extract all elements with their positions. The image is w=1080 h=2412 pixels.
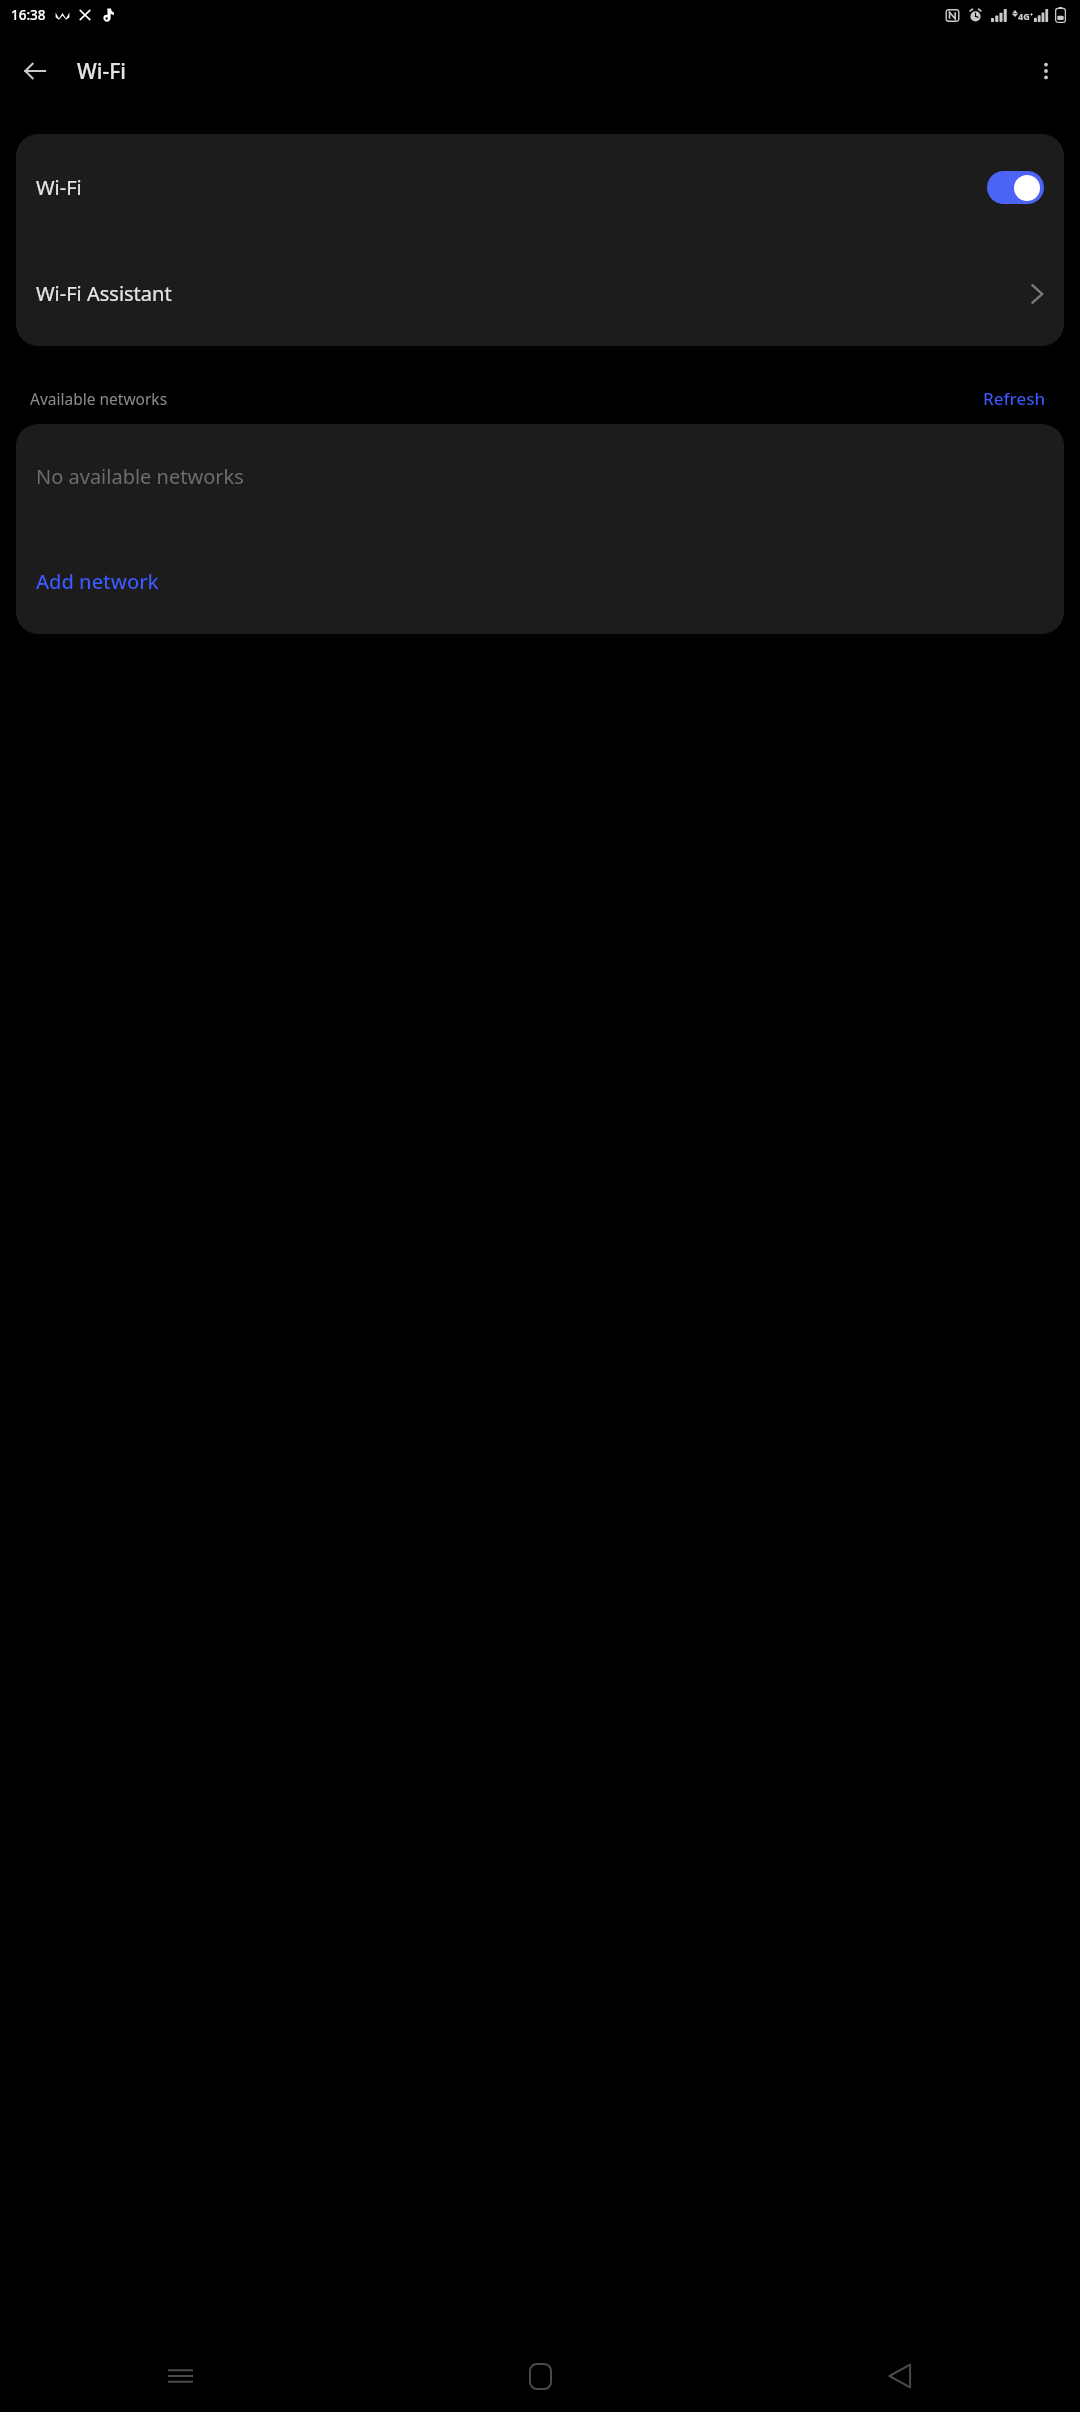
button[interactable]: Back: [7, 43, 63, 99]
staticText: Wi-Fi Assistant: [36, 280, 172, 307]
button[interactable]: Back: [720, 2340, 1080, 2412]
staticText: 16:38: [11, 6, 46, 24]
button[interactable]: More options: [1020, 45, 1072, 97]
staticText: Refresh: [983, 387, 1046, 410]
button[interactable]: Refresh: [979, 383, 1050, 414]
staticText: Available networks: [30, 388, 168, 409]
button[interactable]: Wi-Fi: [16, 134, 1064, 241]
staticText: No available networks: [36, 463, 244, 490]
staticText: Add network: [36, 568, 159, 595]
staticText: 4G⁺: [1018, 10, 1033, 22]
button[interactable]: Recent apps: [0, 2340, 360, 2412]
button[interactable]: Add network: [16, 529, 1064, 634]
staticText: Wi-Fi: [36, 174, 82, 201]
button[interactable]: Wi-Fi Assistant: [16, 241, 1064, 346]
staticText: Wi-Fi: [77, 57, 126, 86]
button[interactable]: Wi-Fi on: [987, 171, 1044, 204]
button[interactable]: Home: [360, 2340, 720, 2412]
